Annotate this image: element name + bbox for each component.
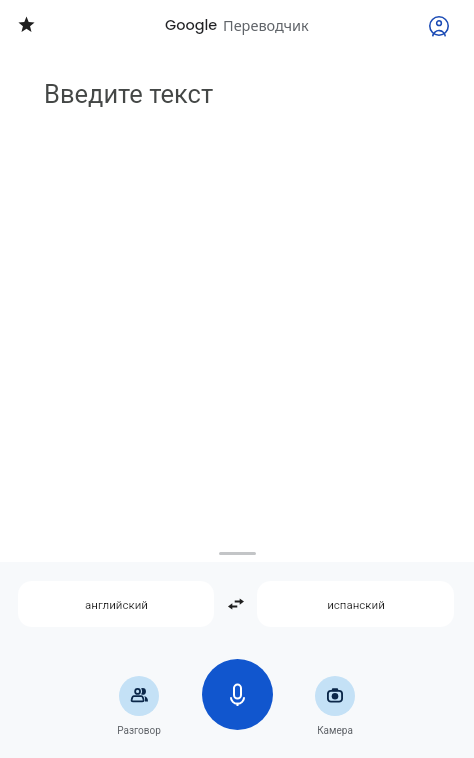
- button[interactable]: английский: [18, 581, 214, 627]
- staticText: испанский: [327, 598, 385, 611]
- button[interactable]: Saved: [6, 6, 46, 46]
- staticText: Разговор: [117, 725, 161, 737]
- button[interactable]: Speak: [202, 659, 273, 730]
- button[interactable]: Account: [419, 6, 459, 46]
- staticText: Переводчик: [223, 15, 309, 35]
- button[interactable]: испанский: [257, 581, 454, 627]
- staticText: Google: [165, 15, 218, 35]
- button[interactable]: Камера: [292, 676, 378, 737]
- staticText: Камера: [317, 725, 353, 737]
- staticText: Введите текст: [44, 79, 214, 109]
- staticText: английский: [85, 598, 148, 611]
- button[interactable]: Swap languages: [214, 581, 257, 627]
- button[interactable]: Разговор: [96, 676, 182, 737]
